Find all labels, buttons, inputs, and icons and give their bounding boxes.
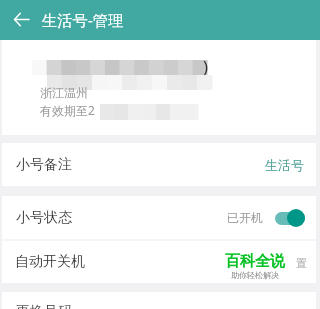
staticText: 有效期至2: [40, 102, 95, 118]
staticText: 更换号码: [16, 303, 72, 309]
staticText: 小号备注: [16, 156, 72, 174]
staticText: 生活号-管理: [42, 10, 124, 31]
button[interactable]: 小号备注: [2, 143, 316, 186]
staticText: 生活号: [265, 157, 304, 173]
button[interactable]: 自动开关机: [2, 241, 316, 283]
staticText: 小号状态: [16, 209, 72, 227]
staticText: 置: [296, 256, 307, 270]
button[interactable]: 小号状态: [2, 196, 316, 239]
staticText: 已开机: [227, 210, 263, 225]
staticText: ): [203, 55, 209, 78]
button[interactable]: 更换号码: [2, 292, 316, 309]
staticText: 助你轻松解决: [231, 270, 279, 280]
staticText: 浙江温州: [40, 85, 88, 100]
staticText: 自动开关机: [15, 253, 85, 271]
staticText: 百科全说: [225, 252, 285, 271]
button[interactable]: Toggle power: [275, 209, 305, 227]
button[interactable]: Back: [0, 0, 36, 40]
